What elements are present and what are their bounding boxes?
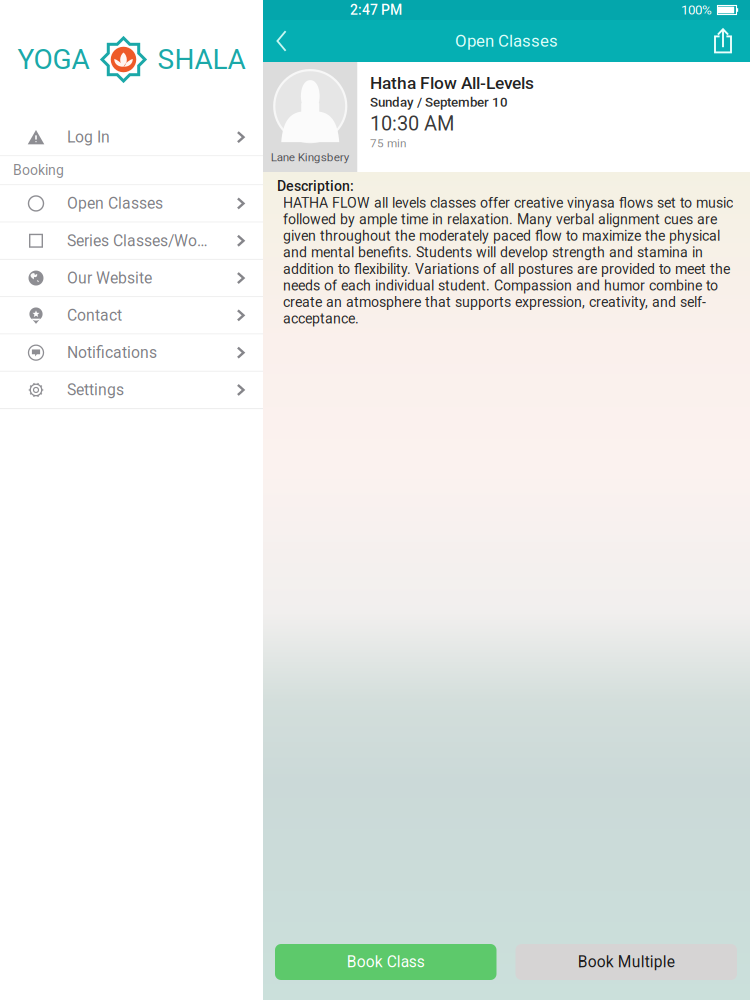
- staticText: 10:30 AM: [370, 112, 454, 135]
- staticText: Notifications: [67, 343, 157, 362]
- button[interactable]: Share: [696, 20, 750, 62]
- staticText: Hatha Flow All-Levels: [370, 73, 534, 93]
- staticText: SHALA: [157, 43, 245, 76]
- staticText: YOGA: [17, 43, 89, 76]
- button[interactable]: Log In: [0, 119, 263, 156]
- staticText: Sunday / September 10: [370, 94, 508, 110]
- staticText: 2:47 PM: [350, 2, 402, 18]
- staticText: 100%: [681, 2, 712, 18]
- button[interactable]: Book Multiple: [515, 944, 737, 980]
- button[interactable]: Settings: [0, 372, 263, 409]
- staticText: Log In: [67, 128, 110, 146]
- staticText: Open Classes: [455, 31, 558, 51]
- staticText: HATHA FLOW all levels classes offer crea…: [283, 195, 733, 327]
- staticText: Open Classes: [67, 194, 163, 213]
- staticText: Our Website: [67, 269, 152, 287]
- button[interactable]: Back: [263, 20, 305, 62]
- staticText: Book Multiple: [578, 953, 675, 971]
- staticText: 75 min: [370, 136, 406, 150]
- staticText: Lane Kingsbery: [271, 150, 350, 164]
- staticText: Settings: [67, 381, 124, 399]
- button[interactable]: Notifications: [0, 334, 263, 372]
- staticText: Contact: [67, 306, 122, 324]
- button[interactable]: Book Class: [275, 944, 496, 980]
- staticText: Book Class: [347, 953, 425, 971]
- button[interactable]: Series Classes/Wo…: [0, 223, 263, 260]
- staticText: Series Classes/Wo…: [67, 231, 208, 250]
- button[interactable]: Contact: [0, 297, 263, 334]
- staticText: Description:: [277, 178, 354, 195]
- button[interactable]: Open Classes: [0, 185, 263, 223]
- button[interactable]: Our Website: [0, 260, 263, 297]
- staticText: Booking: [13, 162, 64, 178]
